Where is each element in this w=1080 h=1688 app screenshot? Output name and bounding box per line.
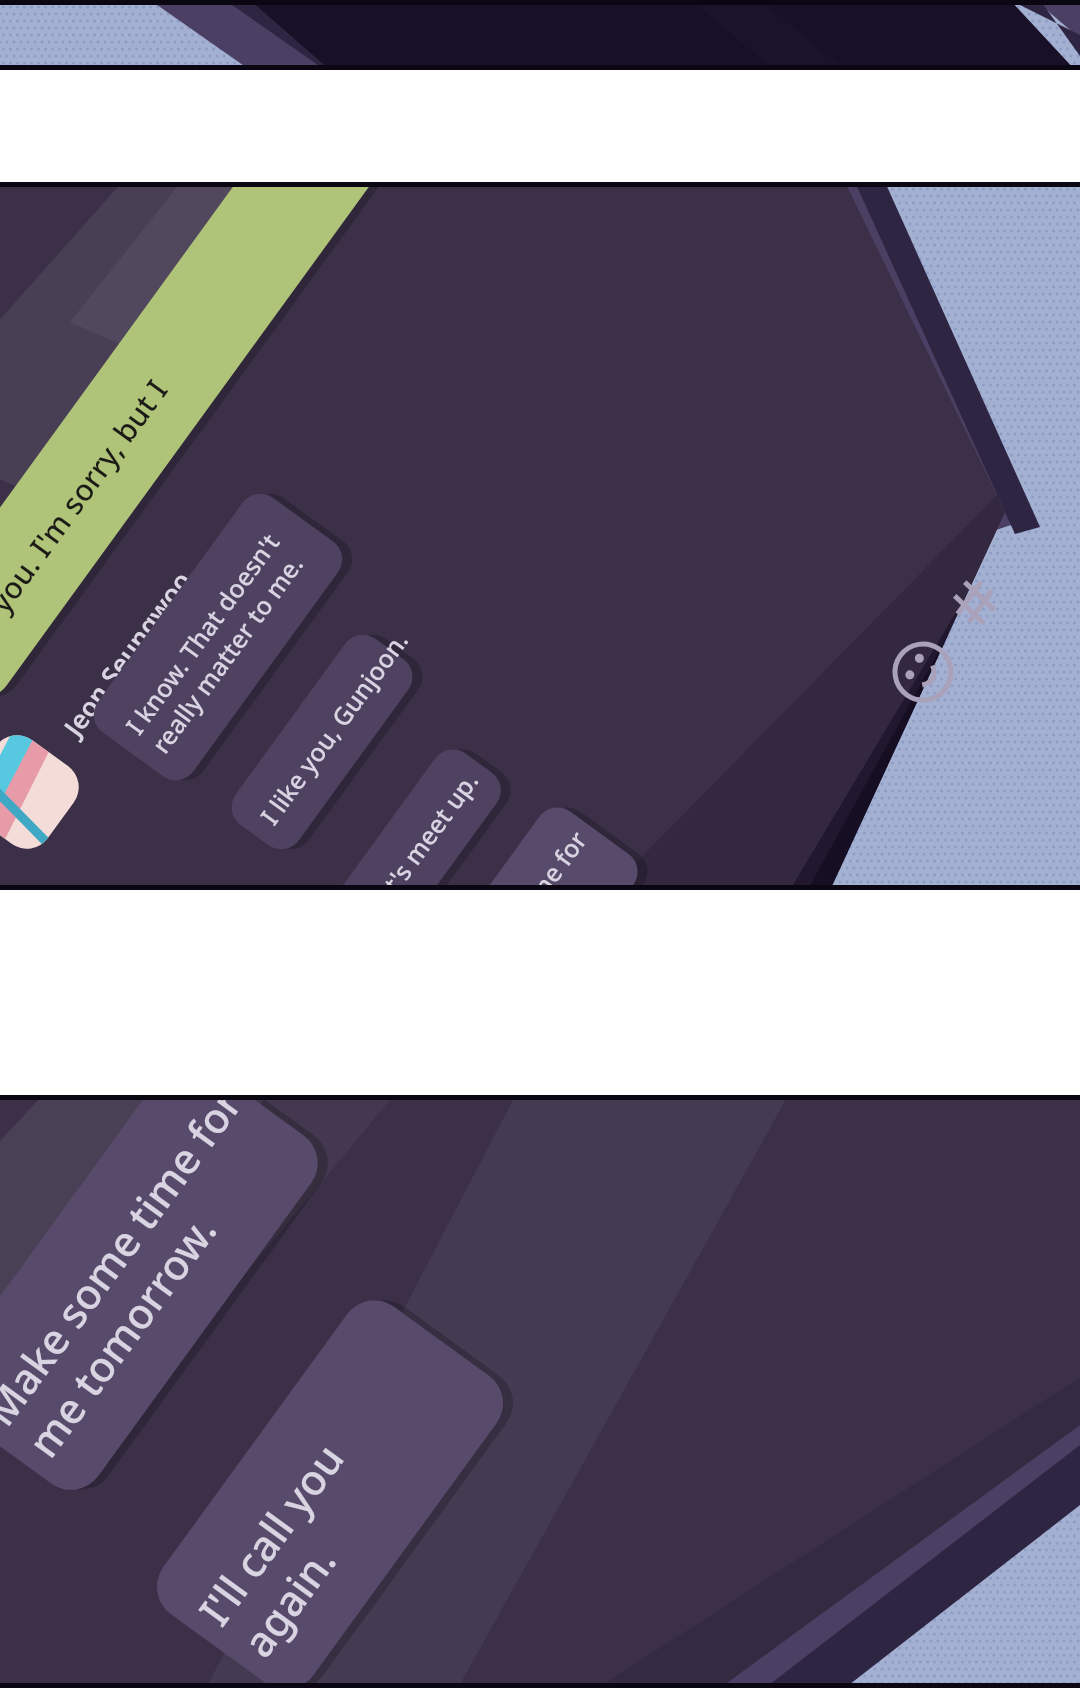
- button[interactable]: Chat conversation with Jeon Seungwoo: [0, 182, 1080, 890]
- button[interactable]: Comic panel, phone held in hand: [0, 0, 1080, 70]
- button[interactable]: Close up of chat messages: [0, 1095, 1080, 1688]
